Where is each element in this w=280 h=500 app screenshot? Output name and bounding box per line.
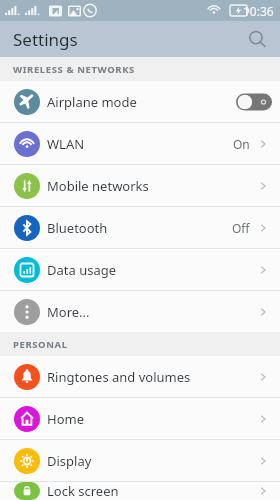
staticText: Data usage <box>47 261 117 279</box>
staticText: PERSONAL <box>13 338 68 351</box>
staticText: Home <box>47 410 84 428</box>
button[interactable]: Airplane mode <box>0 81 280 122</box>
button[interactable]: Data usage <box>0 249 280 290</box>
staticText: WLAN <box>47 135 85 153</box>
button[interactable]: Bluetooth <box>0 207 280 248</box>
staticText: Airplane mode <box>47 93 137 111</box>
staticText: Ringtones and volumes <box>47 368 191 386</box>
staticText: Display <box>47 452 92 470</box>
button[interactable]: Mobile networks <box>0 165 280 206</box>
staticText: On <box>233 136 250 152</box>
staticText: Bluetooth <box>47 219 108 237</box>
staticText: More... <box>47 303 90 321</box>
button[interactable]: Display <box>0 440 280 481</box>
button[interactable]: More... <box>0 291 280 332</box>
button[interactable]: Home <box>0 398 280 439</box>
button[interactable]: Ringtones and volumes <box>0 356 280 397</box>
staticText: 10:36 <box>243 3 274 19</box>
button[interactable] <box>236 92 272 112</box>
staticText: Off <box>232 220 250 236</box>
button[interactable]: WLAN <box>0 123 280 164</box>
staticText: Mobile networks <box>47 177 149 195</box>
button[interactable]: Lock screen <box>0 482 280 500</box>
staticText: Lock screen <box>47 482 119 500</box>
staticText: WIRELESS & NETWORKS <box>13 63 135 76</box>
staticText: Settings <box>13 28 78 51</box>
button[interactable]: Search <box>242 24 272 54</box>
